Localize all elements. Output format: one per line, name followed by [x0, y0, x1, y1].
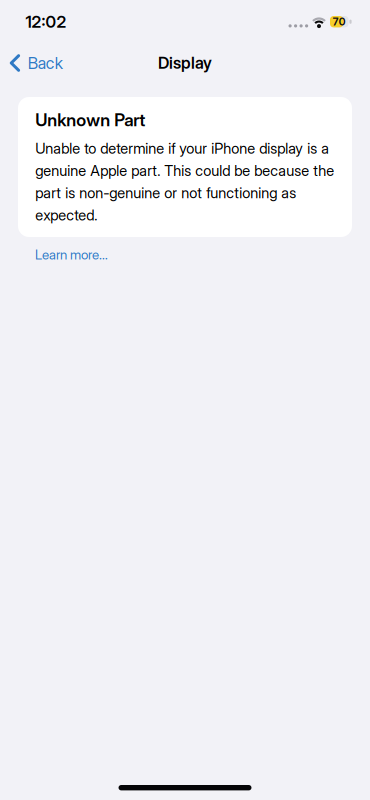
staticText: Back — [28, 53, 63, 73]
staticText: Display — [158, 53, 212, 73]
staticText: Unable to determine if your iPhone displ… — [35, 139, 334, 224]
staticText: 70 — [333, 15, 346, 28]
button[interactable]: Back — [0, 48, 69, 78]
staticText: 12:02 — [25, 12, 66, 32]
staticText: Unknown Part — [35, 109, 145, 130]
staticText: Learn more… — [35, 246, 108, 263]
button[interactable]: Learn more… — [33, 244, 110, 265]
